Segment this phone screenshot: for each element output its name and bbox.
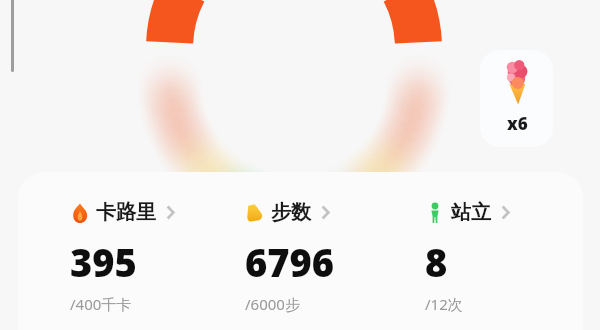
staticText: 步数 (271, 200, 311, 225)
staticText: 站立 (451, 200, 491, 225)
staticText: /6000步 (245, 294, 300, 314)
staticText: /12次 (425, 294, 463, 314)
staticText: 6796 (245, 236, 335, 288)
button[interactable]: 站立 (425, 172, 575, 330)
staticText: 8 (425, 236, 448, 288)
button[interactable]: 步数 (245, 172, 425, 330)
staticText: /400千卡 (70, 294, 132, 314)
staticText: 395 (70, 236, 137, 288)
staticText: 卡路里 (96, 200, 156, 225)
button[interactable]: Ice cream reward, x6 (480, 50, 553, 147)
button[interactable]: 卡路里 (70, 172, 245, 330)
staticText: x6 (507, 112, 528, 135)
